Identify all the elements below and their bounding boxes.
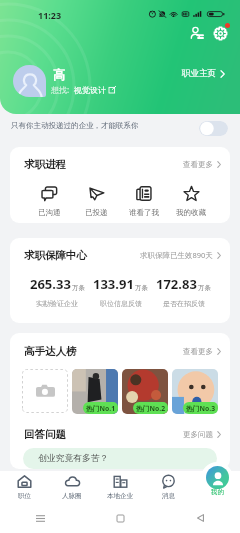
button[interactable]: 172.83 (152, 275, 215, 308)
staticText: 求职保障中心 (24, 249, 87, 262)
button[interactable]: 职位 (0, 474, 48, 500)
staticText: 我的收藏 (176, 208, 206, 217)
staticText: 查看更多 (183, 347, 213, 356)
button[interactable]: 133.91 (89, 275, 152, 308)
staticText: 更多问题 (183, 430, 213, 439)
button[interactable]: Recents (0, 503, 80, 533)
staticText: 我的 (211, 488, 224, 496)
button[interactable]: 求职保障已生效890天 (140, 250, 221, 260)
button[interactable]: 热门No.2 (122, 369, 168, 414)
staticText: 已沟通 (38, 208, 61, 217)
button[interactable]: 人脉圈 (48, 474, 96, 500)
button[interactable]: Home (80, 503, 160, 533)
staticText: 万条 (72, 284, 85, 292)
staticText: 谁看了我 (129, 208, 159, 217)
button[interactable]: 职业主页 (182, 68, 225, 79)
staticText: 热门No.2 (136, 404, 166, 413)
button[interactable]: 热门No.1 (72, 369, 118, 414)
staticText: 265.33 (30, 275, 71, 293)
button[interactable]: 265.33 (25, 275, 89, 308)
button[interactable]: 我的收藏 (171, 185, 211, 217)
button[interactable]: 创业究竟有多苦？ (23, 448, 217, 469)
staticText: 视觉设计 (74, 85, 106, 95)
staticText: 回答问题 (24, 428, 66, 441)
staticText: 只有你主动投递过的企业，才能联系你 (11, 121, 139, 130)
staticText: 求职进程 (24, 158, 66, 171)
staticText: 想找: (51, 84, 70, 95)
button[interactable]: 我的 (200, 462, 234, 500)
staticText: 实勘验证企业 (36, 299, 78, 308)
staticText: 职位 (18, 492, 31, 500)
staticText: 消息 (162, 492, 175, 500)
button[interactable]: 已投递 (76, 185, 116, 217)
staticText: 已投递 (85, 208, 108, 217)
staticText: 万条 (198, 284, 211, 292)
button[interactable]: 更多问题 (183, 430, 221, 439)
staticText: 职位信息反馈 (100, 299, 142, 308)
button[interactable]: 热门No.3 (172, 369, 218, 414)
button[interactable]: 已沟通 (29, 185, 69, 217)
staticText: 热门No.1 (86, 404, 116, 413)
staticText: 高手达人榜 (24, 345, 77, 358)
staticText: 查看更多 (183, 160, 213, 169)
button[interactable]: 本地企业 (96, 474, 144, 500)
staticText: 人脉圈 (62, 492, 82, 500)
staticText: 高 (53, 67, 65, 82)
button[interactable]: 查看更多 (183, 160, 221, 169)
staticText: 11:23 (38, 9, 62, 21)
button[interactable]: 谁看了我 (124, 185, 164, 217)
staticText: 本地企业 (107, 492, 133, 500)
button[interactable]: 查看更多 (183, 347, 221, 356)
button[interactable]: My resume (186, 23, 206, 43)
staticText: 热门No.3 (186, 404, 216, 413)
staticText: 职业主页 (182, 68, 216, 79)
staticText: 创业究竟有多苦？ (38, 453, 109, 464)
staticText: 万条 (135, 284, 148, 292)
button[interactable]: Settings (210, 23, 230, 43)
button[interactable]: 消息 (144, 474, 192, 500)
button[interactable]: Toggle privacy (199, 121, 228, 136)
staticText: 133.91 (93, 275, 134, 293)
button[interactable]: Back (160, 503, 240, 533)
staticText: 172.83 (156, 275, 197, 293)
staticText: 求职保障已生效890天 (140, 250, 213, 260)
button[interactable]: Upload photo (22, 369, 68, 413)
staticText: 是否在招反馈 (163, 299, 205, 308)
button[interactable]: Avatar (13, 65, 46, 97)
